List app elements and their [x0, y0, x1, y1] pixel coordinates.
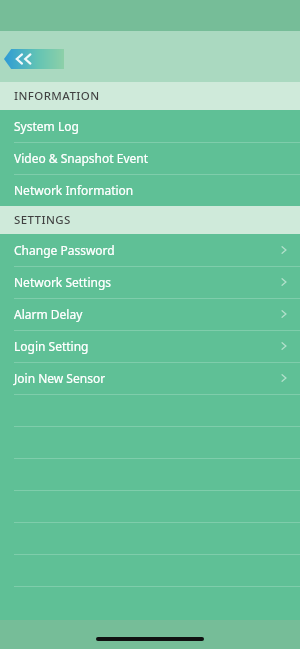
staticText: INFORMATION — [14, 88, 100, 104]
staticText: Join New Sensor — [14, 370, 106, 386]
staticText: System Log — [14, 118, 79, 134]
button[interactable]: Join New Sensor — [0, 362, 300, 394]
button[interactable] — [0, 586, 300, 618]
button[interactable] — [0, 394, 300, 426]
button[interactable]: System Log — [0, 110, 300, 142]
staticText: SETTINGS — [14, 212, 71, 228]
staticText: Network Settings — [14, 274, 112, 290]
button[interactable] — [0, 554, 300, 586]
button[interactable]: Back — [4, 49, 64, 69]
button[interactable] — [0, 522, 300, 554]
button[interactable] — [0, 426, 300, 458]
staticText: Alarm Delay — [14, 306, 83, 322]
button[interactable]: Network Information — [0, 174, 300, 206]
button[interactable]: Alarm Delay — [0, 298, 300, 330]
button[interactable]: Change Password — [0, 234, 300, 266]
staticText: Video & Snapshot Event — [14, 150, 149, 166]
button[interactable] — [0, 490, 300, 522]
button[interactable]: Network Settings — [0, 266, 300, 298]
button[interactable] — [0, 458, 300, 490]
staticText: Change Password — [14, 242, 115, 258]
staticText: Login Setting — [14, 338, 89, 354]
staticText: Network Information — [14, 182, 134, 198]
button[interactable]: Video & Snapshot Event — [0, 142, 300, 174]
button[interactable]: Login Setting — [0, 330, 300, 362]
